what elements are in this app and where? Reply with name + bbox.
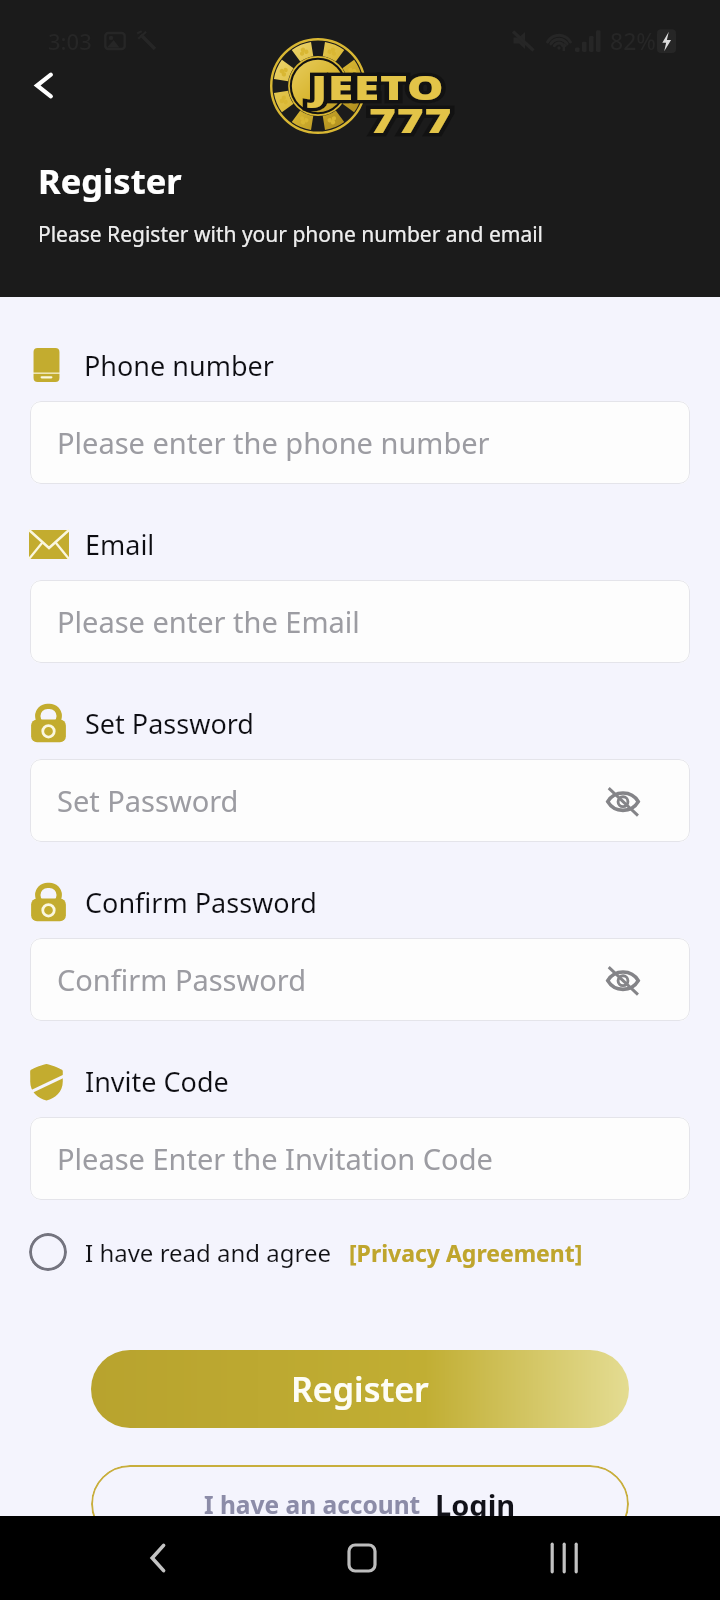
staticText: 777 — [369, 97, 453, 143]
button[interactable]: Home — [330, 1526, 394, 1590]
button[interactable]: Show password — [601, 958, 645, 1002]
staticText: [Privacy Agreement] — [349, 1237, 583, 1268]
staticText: 777 — [369, 97, 453, 143]
button[interactable]: Please enter the phone number — [30, 401, 690, 484]
staticText: Set Password — [57, 781, 239, 820]
button[interactable]: Confirm Password — [30, 938, 690, 1021]
staticText: Phone number — [84, 347, 274, 384]
staticText: Login — [435, 1485, 516, 1524]
staticText: Set Password — [85, 705, 254, 742]
button[interactable]: Set Password — [30, 759, 690, 842]
staticText: Please enter the Email — [57, 602, 360, 641]
button[interactable]: Back — [128, 1526, 192, 1590]
staticText: Please enter the phone number — [57, 423, 490, 462]
staticText: Confirm Password — [57, 960, 307, 999]
button[interactable]: Please enter the Email — [30, 580, 690, 663]
button[interactable]: Back — [16, 58, 70, 112]
button[interactable]: Please Enter the Invitation Code — [30, 1117, 690, 1200]
button[interactable]: Show password — [601, 779, 645, 823]
staticText: I have an account — [204, 1488, 421, 1521]
button[interactable]: Register — [91, 1350, 629, 1428]
button[interactable]: I have read and agree — [29, 1224, 720, 1280]
staticText: Register — [291, 1366, 429, 1412]
staticText: Please Register with your phone number a… — [38, 220, 544, 249]
staticText: Email — [85, 526, 155, 563]
staticText: Confirm Password — [85, 884, 317, 921]
staticText: Invite Code — [85, 1063, 229, 1100]
staticText: Register — [38, 157, 182, 204]
staticText: JEETO — [311, 64, 445, 110]
staticText: 3:03 — [48, 26, 92, 56]
staticText: 82% — [610, 25, 656, 56]
staticText: I have read and agree — [85, 1236, 332, 1269]
staticText: JEETO — [311, 64, 445, 110]
button[interactable]: Recent apps — [531, 1526, 595, 1590]
staticText: Please Enter the Invitation Code — [57, 1139, 493, 1178]
button[interactable]: I have an account — [91, 1465, 629, 1543]
